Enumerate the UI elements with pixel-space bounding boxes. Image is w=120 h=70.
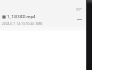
button[interactable]: 1_13(3)ID.mp4	[0, 13, 86, 31]
staticText: 1_13(3)ID.mp4	[7, 14, 36, 20]
staticText: 2024-5-1 14:13:10:44 3MB	[2, 22, 43, 26]
button[interactable]: Item menu	[76, 17, 83, 22]
button[interactable]: More options	[75, 7, 83, 12]
